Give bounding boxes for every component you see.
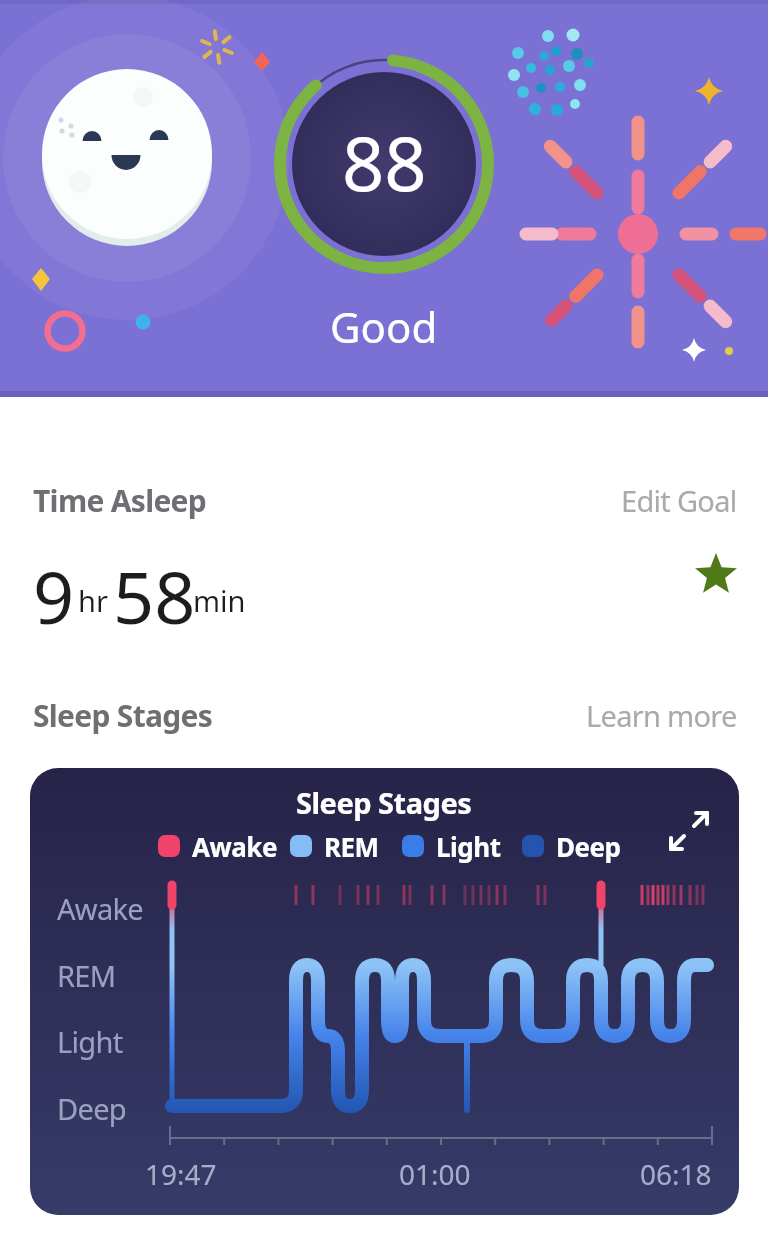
staticText: Time Asleep	[33, 480, 207, 521]
staticText: 19:47	[145, 1155, 217, 1193]
button[interactable]: Learn more	[337, 675, 737, 755]
staticText: REM	[57, 956, 116, 995]
staticText: hr	[78, 581, 108, 620]
staticText: Awake	[192, 829, 277, 864]
staticText: Light	[436, 829, 501, 864]
staticText: min	[193, 581, 246, 620]
staticText: Awake	[57, 889, 143, 928]
staticText: Edit Goal	[621, 481, 737, 520]
staticText: Learn more	[586, 696, 737, 735]
staticText: 9	[33, 547, 75, 627]
staticText: 58	[113, 547, 196, 627]
staticText: Deep	[57, 1089, 126, 1128]
staticText: 88	[342, 112, 427, 213]
staticText: Deep	[556, 829, 621, 864]
staticText: 01:00	[399, 1155, 471, 1193]
staticText: Sleep Stages	[33, 695, 213, 736]
staticText: Good	[330, 298, 438, 355]
button[interactable]: Edit Goal	[337, 460, 737, 540]
staticText: Light	[57, 1022, 123, 1061]
staticText: REM	[324, 829, 379, 864]
staticText: Sleep Stages	[296, 783, 472, 822]
button[interactable]: Sleep Stages	[30, 768, 739, 1215]
staticText: 06:18	[640, 1155, 712, 1193]
